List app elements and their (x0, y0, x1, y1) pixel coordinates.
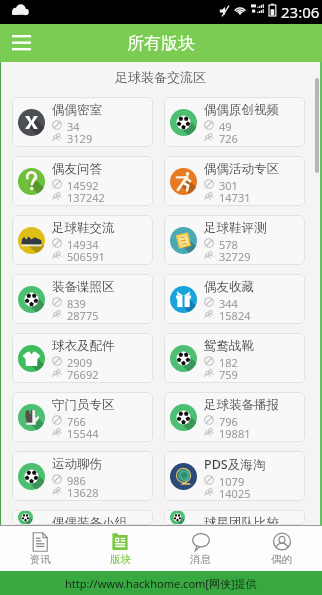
staticText: 偶偶装备小组 (52, 515, 127, 525)
button[interactable]: 守门员专区 (12, 392, 153, 442)
staticText: 19881 (219, 426, 251, 438)
staticText: 49 (219, 119, 232, 131)
staticText: 14025 (219, 486, 251, 498)
staticText: 球衣及配件 (52, 338, 115, 354)
staticText: 344 (219, 296, 238, 308)
staticText: 守门员专区 (52, 397, 115, 413)
staticText: 301 (219, 178, 238, 190)
button[interactable]: 偶友问答 (12, 156, 153, 206)
staticText: 506591 (67, 249, 105, 261)
staticText: 装备谍照区 (52, 279, 115, 295)
staticText: 2909 (67, 355, 93, 367)
staticText: 球星团队比较 (204, 515, 279, 525)
button[interactable]: 足球装备播报 (164, 392, 305, 442)
staticText: 766 (67, 414, 86, 426)
staticText: 1079 (219, 474, 245, 486)
staticText: 32729 (219, 249, 251, 261)
button[interactable]: 偶的 (241, 526, 322, 571)
staticText: 消息 (190, 553, 211, 566)
staticText: 839 (67, 296, 86, 308)
button[interactable]: 足球鞋评测 (164, 215, 305, 265)
staticText: 726 (219, 131, 238, 143)
staticText: 182 (219, 355, 238, 367)
staticText: 足球装备播报 (204, 397, 279, 413)
staticText: 足球鞋评测 (204, 220, 267, 236)
button[interactable]: 偶偶密室 (12, 97, 153, 147)
staticText: 76692 (67, 367, 99, 379)
staticText: 15824 (219, 308, 251, 320)
staticText: 版块 (110, 553, 131, 566)
staticText: 14934 (67, 237, 99, 249)
staticText: 13628 (67, 485, 99, 497)
staticText: 578 (219, 237, 238, 249)
staticText: 运动聊伤 (52, 456, 102, 472)
button[interactable]: 运动聊伤 (12, 451, 153, 501)
staticText: 偶偶活动专区 (204, 161, 279, 177)
staticText: 23:06 (281, 2, 320, 22)
staticText: 偶友收藏 (204, 279, 254, 295)
staticText: 足球装备交流区 (115, 69, 206, 85)
staticText: 鸳鸯战靴 (204, 338, 254, 354)
staticText: 137242 (67, 190, 105, 202)
button[interactable]: 足球鞋交流 (12, 215, 153, 265)
staticText: http://www.hackhome.com[网侠]提供 (65, 576, 257, 591)
staticText: 资讯 (30, 553, 51, 566)
button[interactable]: PDS及海淘 (164, 451, 305, 501)
staticText: 14731 (219, 190, 251, 202)
staticText: 759 (219, 367, 238, 379)
staticText: 34 (67, 119, 80, 131)
staticText: 偶友问答 (52, 161, 102, 177)
button[interactable]: Menu (0, 24, 42, 62)
button[interactable]: 球衣及配件 (12, 333, 153, 383)
staticText: 足球鞋交流 (52, 220, 115, 236)
staticText: 14592 (67, 178, 99, 190)
button[interactable]: 资讯 (0, 526, 80, 571)
staticText: 偶偶原创视频 (204, 102, 279, 118)
staticText: 986 (67, 473, 86, 485)
button[interactable]: 版块 (80, 526, 160, 571)
button[interactable]: 偶偶装备小组 (12, 510, 153, 525)
staticText: 3129 (67, 131, 93, 143)
button[interactable]: 鸳鸯战靴 (164, 333, 305, 383)
button[interactable]: 消息 (160, 526, 241, 571)
staticText: 28775 (67, 308, 99, 320)
button[interactable]: 球星团队比较 (164, 510, 305, 525)
button[interactable]: 偶偶原创视频 (164, 97, 305, 147)
button[interactable]: 偶友收藏 (164, 274, 305, 324)
staticText: 15544 (67, 426, 99, 438)
button[interactable]: 偶偶活动专区 (164, 156, 305, 206)
staticText: 偶偶密室 (52, 102, 102, 118)
staticText: 偶的 (271, 553, 292, 566)
button[interactable]: 装备谍照区 (12, 274, 153, 324)
staticText: 所有版块 (127, 33, 195, 54)
staticText: PDS及海淘 (204, 456, 266, 473)
staticText: 796 (219, 414, 238, 426)
